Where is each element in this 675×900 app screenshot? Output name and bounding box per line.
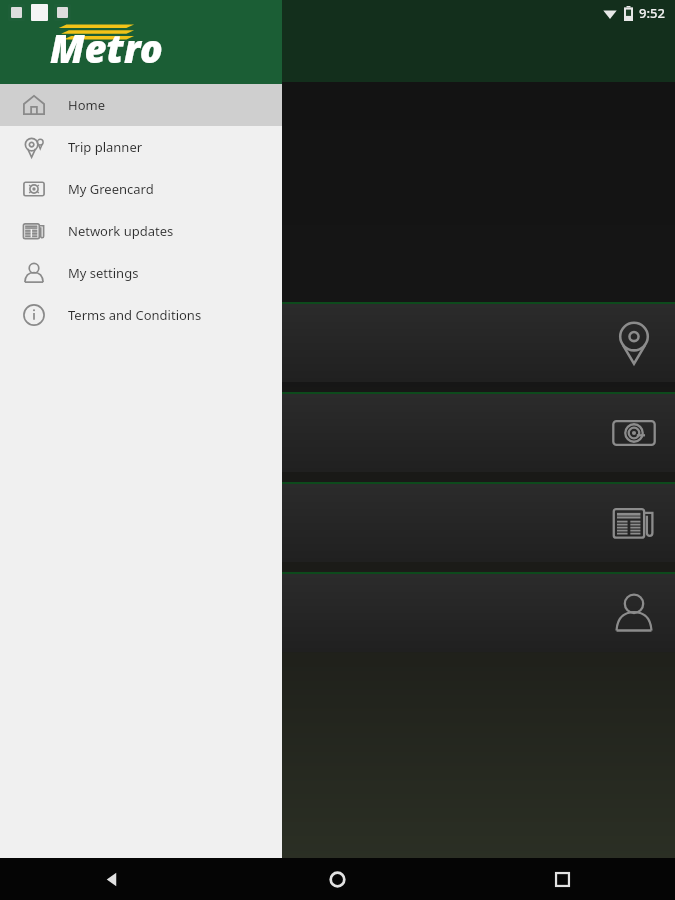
- other: Trip planner: [611, 320, 657, 366]
- staticText: Metro: [50, 22, 163, 70]
- button[interactable]: My Greencard: [0, 392, 675, 472]
- button[interactable]: Network updates: [0, 482, 675, 562]
- staticText: Network updates: [68, 222, 174, 240]
- other: My settings: [611, 590, 657, 636]
- button[interactable]: My Greencard: [0, 168, 282, 210]
- button[interactable]: Network updates: [0, 210, 282, 252]
- button[interactable]: Trip planner: [0, 126, 282, 168]
- other: Network updates: [611, 500, 657, 546]
- staticText: 9:52: [639, 4, 665, 22]
- button[interactable]: Recents: [450, 858, 675, 900]
- button[interactable]: lt city.: [0, 572, 675, 652]
- other: My Greencard: [611, 410, 657, 456]
- staticText: Home: [68, 96, 105, 114]
- button[interactable]: Home: [0, 84, 282, 126]
- staticText: Terms and Conditions: [68, 306, 202, 324]
- staticText: My Greencard: [68, 180, 154, 198]
- button[interactable]: Terms and Conditions: [0, 294, 282, 336]
- staticText: Trip planner: [68, 138, 143, 156]
- staticText: My settings: [68, 264, 139, 282]
- button[interactable]: Home: [225, 858, 450, 900]
- button[interactable]: My settings: [0, 252, 282, 294]
- button[interactable]: favourites.: [0, 302, 675, 382]
- button[interactable]: Back: [0, 858, 225, 900]
